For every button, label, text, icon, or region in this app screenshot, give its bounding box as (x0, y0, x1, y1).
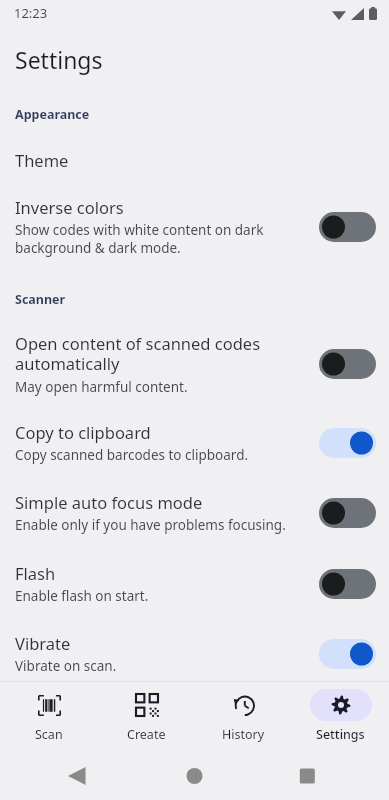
staticText: Inverse colors (15, 196, 124, 218)
button[interactable]: Create (98, 682, 195, 743)
staticText: May open harmful content. (15, 378, 188, 396)
other: History (233, 694, 255, 716)
button[interactable]: On (319, 428, 376, 458)
other: Scan (38, 695, 61, 716)
staticText: Appearance (15, 106, 90, 123)
staticText: Scanner (15, 291, 66, 308)
staticText: Enable only if you have problems focusin… (15, 516, 286, 534)
button[interactable]: Simple auto focus mode (0, 464, 389, 534)
staticText: 12:23 (14, 4, 48, 22)
button[interactable]: Theme (0, 123, 389, 171)
staticText: Copy scanned barcodes to clipboard. (15, 446, 249, 464)
staticText: Vibrate on scan. (15, 657, 117, 675)
staticText: Settings (316, 726, 365, 743)
staticText: Show codes with white content on dark ba… (15, 221, 264, 257)
button[interactable]: Off (319, 569, 376, 599)
staticText: Theme (15, 149, 69, 171)
button[interactable]: Settings (292, 682, 389, 743)
staticText: Scan (35, 726, 63, 743)
button[interactable]: History (195, 682, 292, 743)
other: Settings (331, 695, 351, 715)
staticText: History (222, 726, 265, 743)
button[interactable]: Off (319, 498, 376, 528)
button[interactable]: Copy to clipboard (0, 396, 389, 464)
button[interactable]: Inverse colors (0, 171, 389, 257)
button[interactable]: On (319, 639, 376, 669)
other: Create (136, 694, 158, 716)
staticText: Enable flash on start. (15, 587, 149, 605)
staticText: Vibrate (15, 632, 71, 654)
staticText: Open content of scanned codes automatica… (15, 332, 261, 375)
staticText: Flash (15, 562, 56, 584)
button[interactable]: Off (319, 212, 376, 242)
staticText: Simple auto focus mode (15, 491, 203, 513)
staticText: Settings (15, 44, 103, 75)
button[interactable]: Flash (0, 534, 389, 605)
button[interactable]: Scan (0, 682, 98, 743)
staticText: Copy to clipboard (15, 421, 151, 443)
staticText: Create (127, 726, 166, 743)
button[interactable]: Vibrate (0, 605, 389, 675)
button[interactable]: Off (319, 349, 376, 379)
button[interactable]: Open content of scanned codes automatica… (0, 308, 389, 396)
